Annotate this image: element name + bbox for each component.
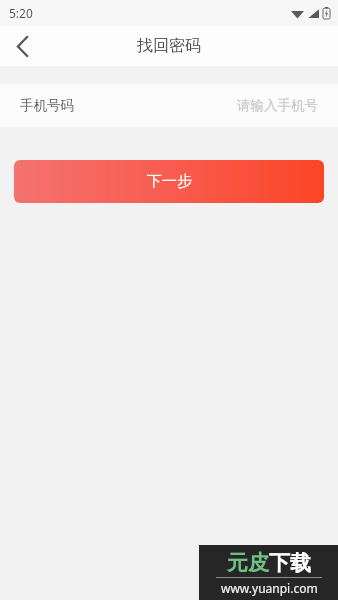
staticText: 下载 <box>269 550 311 576</box>
staticText: 手机号码 <box>20 97 74 114</box>
staticText: 5:20 <box>9 5 33 21</box>
staticText: 请输入手机号 <box>237 97 318 114</box>
button[interactable]: 下一步 <box>14 160 324 203</box>
staticText: www.yuanpi.com <box>221 580 318 596</box>
staticText: 找回密码 <box>137 36 201 56</box>
staticText: 下一步 <box>147 172 192 191</box>
staticText: 元皮 <box>227 550 269 576</box>
button[interactable]: Back <box>0 26 44 66</box>
button[interactable]: 手机号码 <box>0 84 338 127</box>
